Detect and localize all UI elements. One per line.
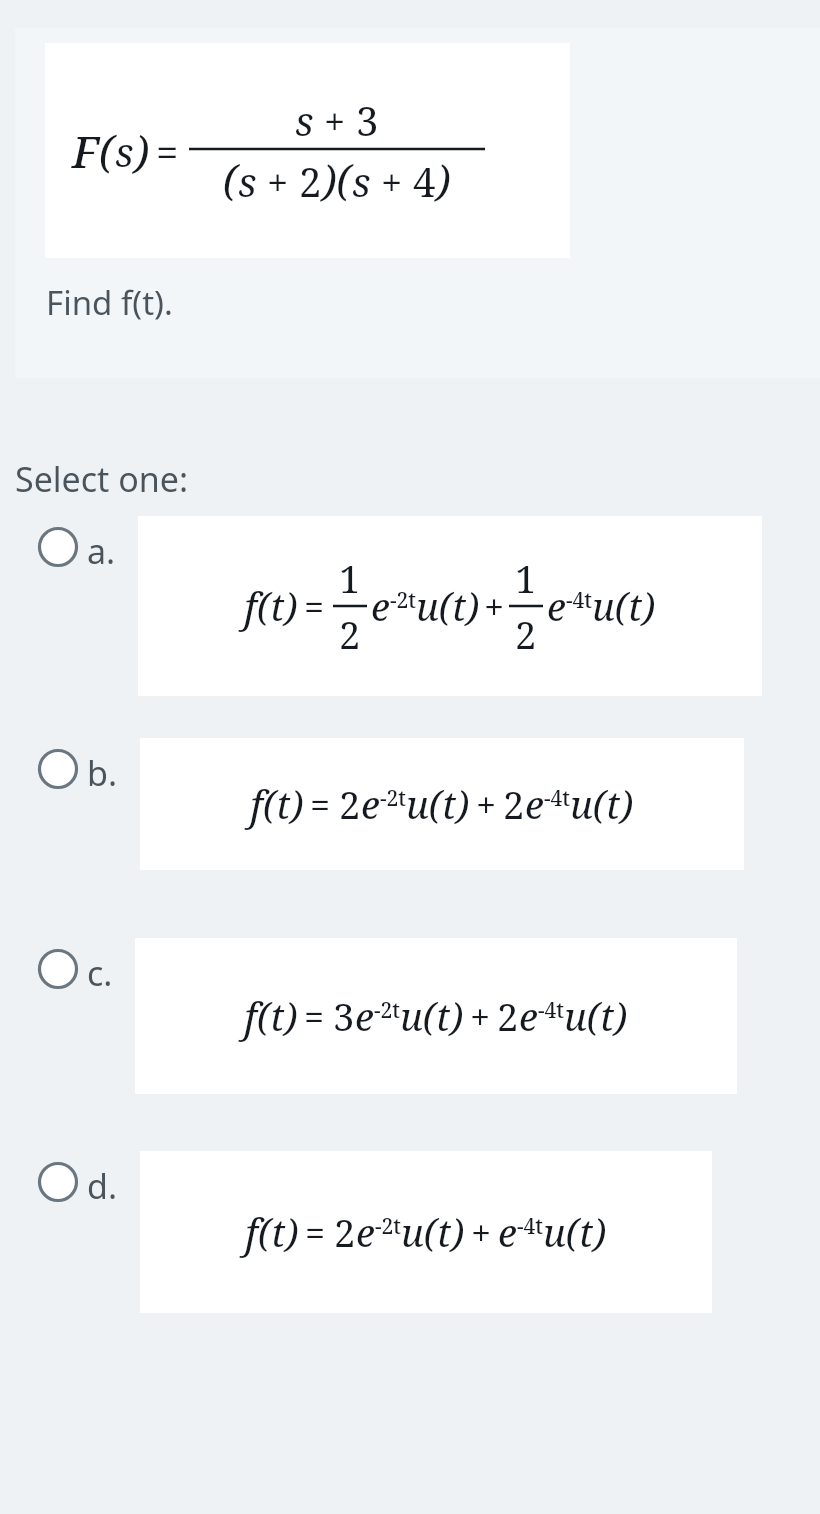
staticText: 2: [334, 1206, 356, 1258]
staticText: (t): [263, 778, 304, 830]
staticText: (t): [257, 990, 298, 1042]
staticText: -4t: [517, 1212, 543, 1241]
staticText: +: [371, 156, 413, 208]
staticText: Select one:: [15, 456, 189, 502]
staticText: +: [257, 156, 299, 208]
staticText: -2t: [380, 784, 406, 813]
staticText: =: [304, 582, 325, 631]
staticText: e: [519, 990, 538, 1042]
staticText: u(t): [564, 990, 628, 1042]
staticText: )(: [322, 151, 352, 208]
staticText: e: [525, 778, 544, 830]
staticText: e: [547, 580, 566, 632]
staticText: a.: [87, 528, 116, 574]
staticText: -4t: [544, 784, 570, 813]
staticText: =: [305, 1208, 326, 1257]
button[interactable]: c.: [0, 938, 820, 1094]
staticText: u(t): [416, 580, 480, 632]
staticText: s: [238, 154, 257, 208]
staticText: +: [476, 780, 497, 829]
staticText: -2t: [375, 1212, 401, 1241]
staticText: u(t): [406, 778, 470, 830]
staticText: 2: [515, 608, 537, 660]
staticText: s: [115, 124, 134, 178]
staticText: (t): [257, 580, 298, 632]
staticText: u(t): [400, 990, 464, 1042]
staticText: -4t: [566, 586, 592, 615]
staticText: 2: [339, 778, 361, 830]
staticText: e: [498, 1206, 517, 1258]
staticText: -2t: [390, 586, 416, 615]
staticText: 4: [413, 154, 436, 208]
staticText: (t): [258, 1206, 299, 1258]
staticText: e: [356, 1206, 375, 1258]
button[interactable]: d.: [0, 1151, 820, 1313]
staticText: s: [352, 154, 371, 208]
staticText: -2t: [374, 996, 400, 1025]
staticText: 2: [497, 990, 519, 1042]
staticText: -4t: [538, 996, 564, 1025]
staticText: F: [72, 121, 99, 181]
staticText: s: [295, 93, 314, 147]
staticText: +: [484, 582, 505, 631]
staticText: =: [156, 124, 179, 178]
staticText: =: [304, 992, 325, 1041]
staticText: 3: [356, 93, 379, 147]
staticText: 1: [515, 552, 537, 604]
staticText: 1: [339, 552, 361, 604]
staticText: +: [471, 1208, 492, 1257]
staticText: u(t): [592, 580, 656, 632]
staticText: =: [310, 780, 331, 829]
staticText: ): [134, 121, 150, 181]
staticText: +: [470, 992, 491, 1041]
staticText: 2: [339, 608, 361, 660]
staticText: +: [314, 95, 356, 147]
staticText: e: [361, 778, 380, 830]
staticText: 2: [503, 778, 525, 830]
staticText: 2: [299, 154, 322, 208]
staticText: u(t): [401, 1206, 465, 1258]
staticText: c.: [87, 950, 113, 996]
staticText: f: [244, 579, 257, 633]
staticText: 3: [333, 990, 355, 1042]
staticText: ): [436, 151, 451, 208]
staticText: f: [245, 1205, 258, 1259]
staticText: e: [371, 580, 390, 632]
staticText: (: [99, 121, 115, 181]
button[interactable]: a.: [0, 516, 820, 696]
staticText: Find f(t).: [46, 280, 173, 325]
staticText: f: [250, 777, 263, 831]
staticText: b.: [87, 750, 118, 796]
staticText: f: [244, 989, 257, 1043]
staticText: d.: [87, 1163, 118, 1209]
staticText: u(t): [570, 778, 634, 830]
staticText: u(t): [543, 1206, 607, 1258]
button[interactable]: b.: [0, 738, 820, 870]
staticText: e: [355, 990, 374, 1042]
staticText: (: [223, 151, 238, 208]
